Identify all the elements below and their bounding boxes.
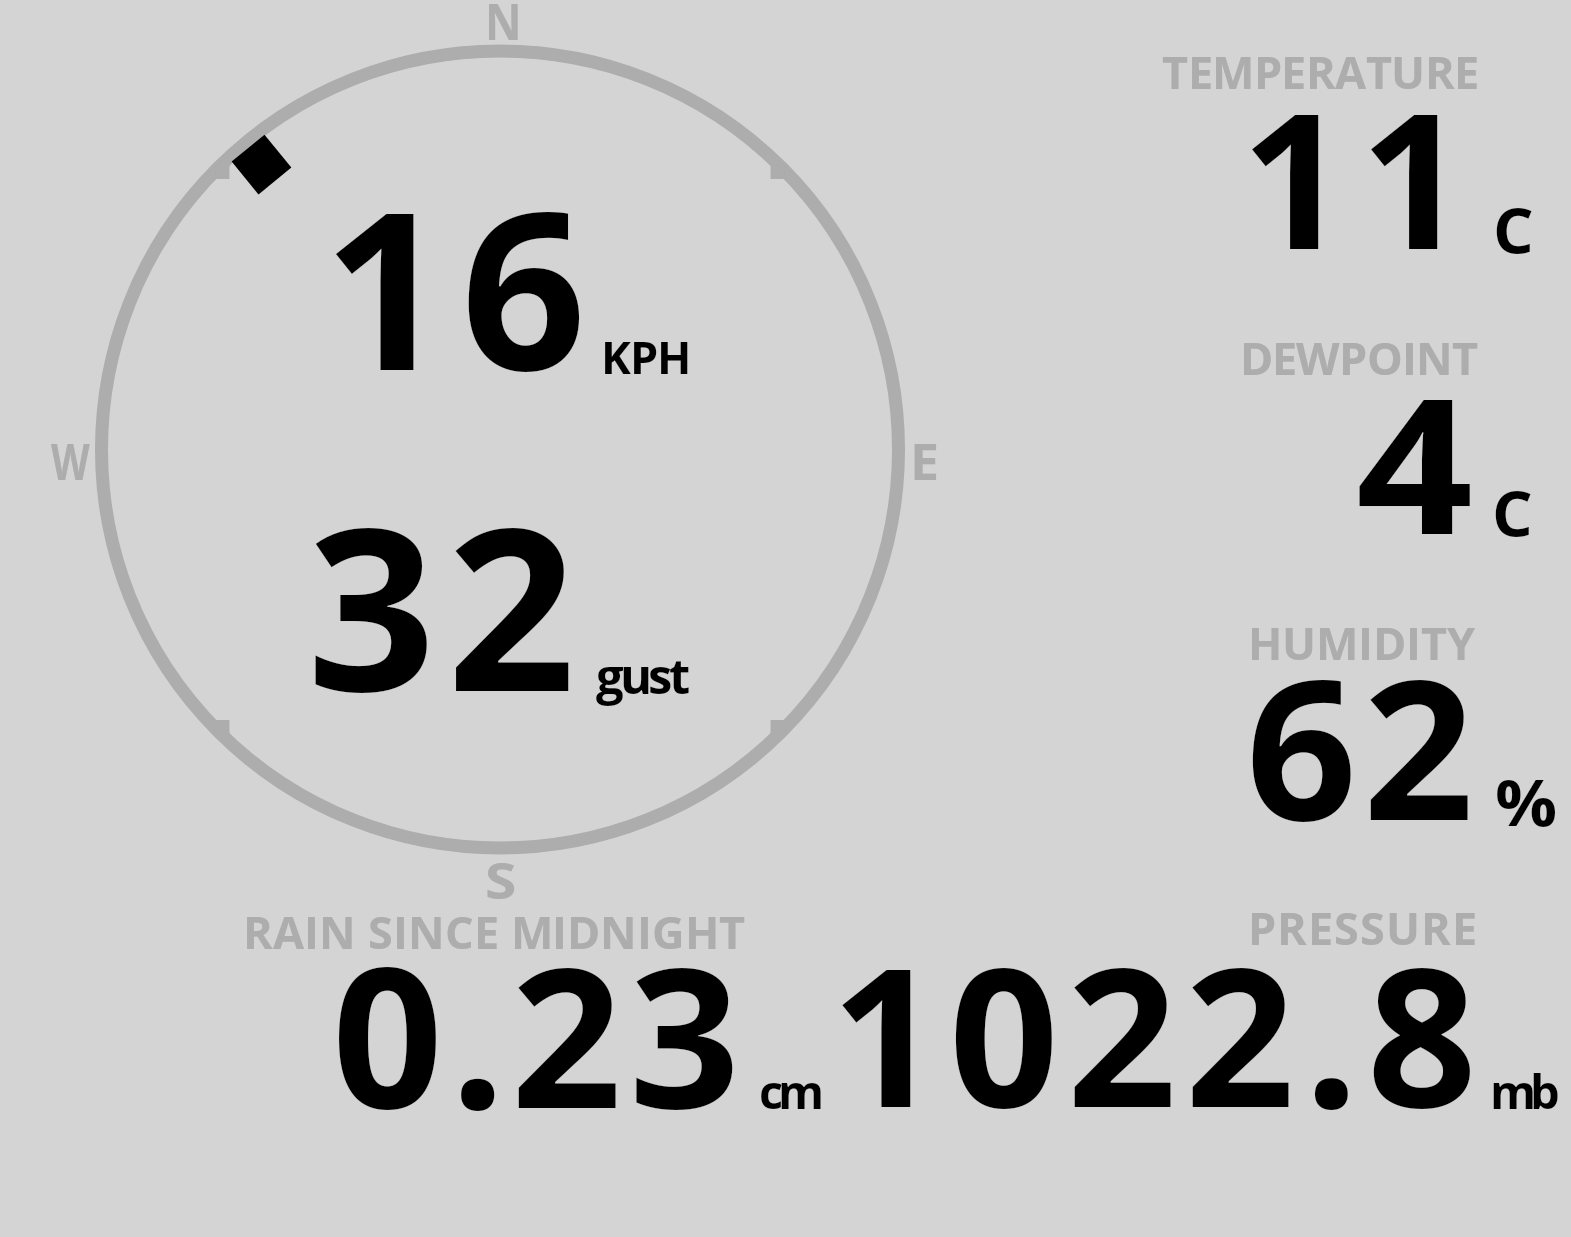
button[interactable]: Temperature 11 C [1100, 30, 1571, 300]
button[interactable]: Wind speed 16 KPH, gust 32, direction no… [40, 0, 960, 900]
button[interactable]: Dew point 4 C [1100, 310, 1571, 570]
button[interactable]: Pressure 1022.8 mb [840, 890, 1571, 1130]
button[interactable]: Rain since midnight 0.23 cm [230, 890, 840, 1130]
button[interactable]: Humidity 62 percent [1100, 600, 1571, 860]
